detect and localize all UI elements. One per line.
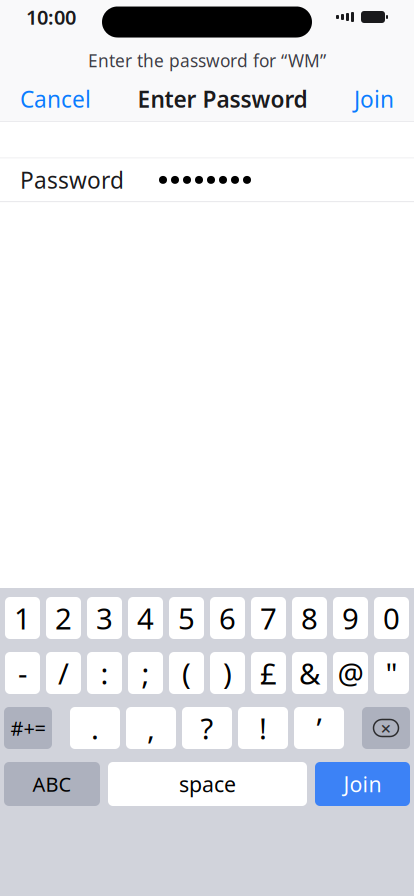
staticText: 0 [383, 598, 400, 637]
button[interactable]: ( [169, 652, 204, 694]
staticText: ( [182, 653, 191, 692]
button[interactable]: & [292, 652, 327, 694]
button[interactable]: 4 [128, 597, 163, 639]
staticText: 8 [301, 598, 318, 637]
button[interactable]: ’ [294, 707, 344, 749]
button[interactable]: ; [128, 652, 163, 694]
staticText: 9 [342, 598, 359, 637]
button[interactable]: 2 [46, 597, 81, 639]
button[interactable]: #+= [4, 707, 52, 749]
staticText: Cancel [20, 84, 91, 114]
staticText: space [179, 770, 236, 798]
button[interactable]: ! [238, 707, 288, 749]
staticText: 3 [96, 598, 113, 637]
button[interactable]: Cancel [0, 77, 111, 121]
staticText: £ [260, 653, 277, 692]
staticText: Password [20, 165, 124, 195]
button[interactable]: Password [0, 158, 414, 201]
button[interactable]: 6 [210, 597, 245, 639]
staticText: 4 [137, 598, 154, 637]
staticText: #+= [10, 715, 45, 741]
button[interactable]: - [5, 652, 40, 694]
staticText: Enter Password [137, 84, 307, 114]
staticText: @ [337, 653, 363, 692]
staticText: : [100, 653, 108, 692]
button[interactable]: 0 [374, 597, 409, 639]
button[interactable]: ABC [4, 762, 100, 806]
button[interactable]: 9 [333, 597, 368, 639]
button[interactable]: Delete [362, 707, 410, 749]
staticText: Enter the password for “WM” [88, 49, 326, 72]
staticText: 10:00 [26, 4, 76, 30]
button[interactable]: @ [333, 652, 368, 694]
staticText: ! [259, 708, 267, 747]
button[interactable]: 3 [87, 597, 122, 639]
staticText: ) [223, 653, 232, 692]
staticText: . [91, 708, 99, 747]
button[interactable]: space [108, 762, 307, 806]
staticText: 5 [178, 598, 195, 637]
staticText: 1 [14, 598, 31, 637]
staticText: , [147, 708, 155, 747]
button[interactable]: , [126, 707, 176, 749]
staticText: & [299, 653, 320, 692]
staticText: ; [141, 653, 149, 692]
staticText: × [380, 716, 391, 740]
staticText: Join [343, 770, 381, 798]
staticText: 7 [260, 598, 277, 637]
staticText: - [18, 653, 27, 692]
staticText: ABC [32, 771, 71, 797]
staticText: 2 [55, 598, 72, 637]
button[interactable]: . [70, 707, 120, 749]
button[interactable]: ? [182, 707, 232, 749]
button[interactable]: 7 [251, 597, 286, 639]
button[interactable]: £ [251, 652, 286, 694]
button[interactable]: : [87, 652, 122, 694]
button[interactable]: Join [315, 762, 410, 806]
button[interactable]: Join [334, 77, 414, 121]
staticText: Join [354, 84, 394, 114]
staticText: ’ [316, 708, 321, 747]
staticText: 6 [219, 598, 236, 637]
button[interactable]: 1 [5, 597, 40, 639]
button[interactable]: / [46, 652, 81, 694]
button[interactable]: 8 [292, 597, 327, 639]
button[interactable]: ) [210, 652, 245, 694]
staticText: / [58, 653, 69, 692]
button[interactable]: " [374, 652, 409, 694]
button[interactable]: 5 [169, 597, 204, 639]
staticText: ? [200, 708, 213, 747]
staticText: " [385, 653, 397, 692]
